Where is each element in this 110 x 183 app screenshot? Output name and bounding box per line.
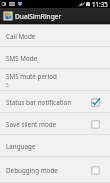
- staticText: DualSimRinger: [15, 12, 62, 21]
- button[interactable]: Disabled, tap to enable: [89, 164, 102, 177]
- staticText: SMS mute period: [6, 72, 57, 81]
- button[interactable]: SMS Mode: [0, 47, 110, 69]
- button[interactable]: Call Mode: [0, 25, 110, 47]
- staticText: Call Mode: [6, 32, 36, 41]
- staticText: Language: [6, 142, 36, 151]
- button[interactable]: Language: [0, 135, 110, 157]
- button[interactable]: SMS mute period: [0, 69, 110, 91]
- staticText: Save silent mode: [6, 120, 57, 129]
- staticText: 5: [6, 82, 9, 88]
- button[interactable]: Save silent mode: [0, 113, 110, 135]
- staticText: SMS Mode: [6, 54, 38, 63]
- button[interactable]: Status bar notification: [0, 91, 110, 113]
- button[interactable]: Debugging mode: [0, 157, 110, 183]
- staticText: Debugging mode: [6, 166, 58, 175]
- button[interactable]: Enabled, tap to disable: [89, 96, 102, 109]
- staticText: 11:35: [92, 0, 108, 8]
- staticText: Status bar notification: [6, 98, 72, 107]
- button[interactable]: Disabled, tap to enable: [89, 118, 102, 131]
